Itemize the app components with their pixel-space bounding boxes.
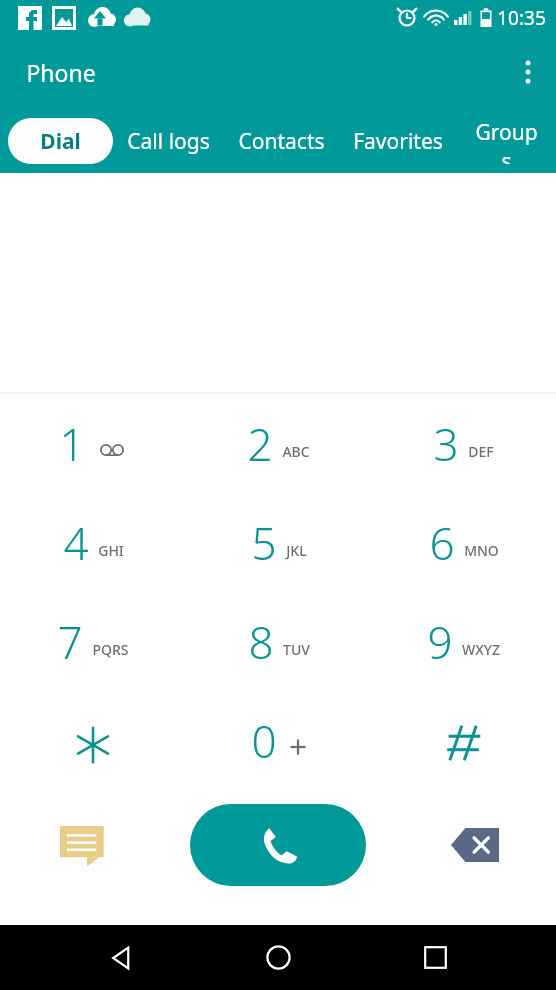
button[interactable]: Favorites bbox=[339, 118, 457, 164]
staticText: Call logs bbox=[127, 127, 210, 156]
staticText: 4 bbox=[63, 513, 89, 573]
staticText: ABC bbox=[282, 442, 310, 461]
staticText: 1 bbox=[59, 414, 85, 474]
button[interactable]: More options bbox=[500, 44, 556, 100]
staticText: Favorites bbox=[353, 127, 443, 156]
button[interactable]: Delete bbox=[444, 814, 506, 876]
button[interactable]: Dial bbox=[8, 118, 113, 164]
button[interactable]: Key 3 bbox=[371, 394, 556, 493]
staticText: DEF bbox=[468, 442, 494, 461]
button[interactable]: Call logs bbox=[113, 118, 224, 164]
staticText: 0 bbox=[251, 711, 277, 771]
staticText: 6 bbox=[429, 513, 455, 573]
staticText: 9 bbox=[427, 612, 453, 672]
button[interactable]: Key 1 bbox=[0, 394, 186, 493]
staticText: Dial bbox=[40, 127, 81, 156]
staticText: 8 bbox=[248, 612, 274, 672]
button[interactable]: Key 0 bbox=[186, 691, 371, 790]
staticText: 5 bbox=[251, 513, 277, 573]
button[interactable]: Key 9 bbox=[371, 592, 556, 691]
staticText: GHI bbox=[98, 541, 124, 560]
staticText: Contacts bbox=[238, 127, 325, 156]
staticText: JKL bbox=[286, 541, 307, 560]
button[interactable]: Key 2 bbox=[186, 394, 371, 493]
button[interactable]: Key 8 bbox=[186, 592, 371, 691]
button[interactable]: Home bbox=[243, 925, 313, 990]
staticText: TUV bbox=[283, 640, 310, 659]
button[interactable]: Key # bbox=[371, 691, 556, 790]
button[interactable]: Key 7 bbox=[0, 592, 186, 691]
staticText: 7 bbox=[57, 612, 83, 672]
button[interactable]: Recent apps bbox=[400, 925, 470, 990]
staticText: 2 bbox=[247, 414, 273, 474]
staticText: Groups bbox=[471, 118, 542, 164]
staticText: PQRS bbox=[92, 640, 129, 659]
staticText: 10:35 bbox=[497, 5, 546, 31]
button[interactable]: Groups bbox=[457, 118, 556, 164]
staticText: WXYZ bbox=[462, 640, 500, 659]
staticText: Phone bbox=[26, 57, 96, 88]
staticText: 3 bbox=[433, 414, 459, 474]
button[interactable]: Key * bbox=[0, 691, 186, 790]
button[interactable]: Contacts bbox=[224, 118, 339, 164]
button[interactable]: Send message bbox=[52, 814, 114, 876]
button[interactable]: Back bbox=[87, 925, 157, 990]
button[interactable]: Key 4 bbox=[0, 493, 186, 592]
button[interactable]: Key 5 bbox=[186, 493, 371, 592]
staticText: MNO bbox=[464, 541, 499, 560]
button[interactable]: Key 6 bbox=[371, 493, 556, 592]
button[interactable]: Call bbox=[190, 804, 366, 886]
